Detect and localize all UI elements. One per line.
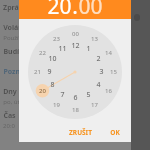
staticText: 20:0 (3, 122, 15, 130)
button[interactable]: OK (105, 125, 125, 140)
staticText: 19 (53, 101, 60, 109)
staticText: 2 (96, 54, 101, 64)
button[interactable]: 00 (78, 0, 103, 19)
staticText: 00 (72, 30, 79, 38)
staticText: Použít (3, 34, 21, 42)
staticText: 23 (53, 35, 60, 43)
staticText: 10 (48, 54, 57, 64)
staticText: 16 (105, 87, 112, 95)
button[interactable]: Dny (0, 84, 150, 108)
staticText: 7 (60, 90, 65, 100)
staticText: 17 (91, 101, 98, 109)
staticText: 21 (34, 68, 41, 76)
staticText: Budík (3, 47, 24, 57)
button[interactable]: Poznámka (0, 64, 150, 84)
button[interactable]: 20 (47, 0, 72, 19)
staticText: OK (110, 128, 120, 137)
staticText: 3 (99, 67, 104, 77)
staticText: 5 (86, 90, 91, 100)
staticText: 6 (73, 93, 78, 103)
staticText: po, út (3, 98, 20, 106)
staticText: 11 (58, 44, 67, 54)
button[interactable]: Zpráva (0, 0, 150, 20)
staticText: 9 (47, 67, 52, 77)
staticText: Volání (3, 23, 25, 33)
staticText: 13 (91, 35, 98, 43)
button[interactable]: ZRUŠIT (64, 125, 97, 140)
staticText: Čas (3, 111, 16, 121)
staticText: . (72, 0, 78, 19)
staticText: 1 (86, 44, 91, 54)
staticText: ZRUŠIT (69, 128, 92, 137)
button[interactable]: Čas (0, 108, 150, 132)
staticText: 14 (105, 49, 112, 57)
staticText: 20 (39, 87, 46, 95)
staticText: Poznámka (3, 67, 40, 77)
staticText: Dny (3, 87, 17, 97)
staticText: 22 (39, 49, 46, 57)
staticText: 8 (50, 80, 55, 90)
staticText: 18 (72, 106, 79, 114)
button[interactable]: Budík (0, 44, 150, 64)
button[interactable]: Volání (0, 20, 150, 44)
staticText: 15 (110, 68, 117, 76)
staticText: 4 (96, 80, 101, 90)
staticText: 12 (71, 41, 80, 51)
staticText: Zpráva (3, 3, 27, 13)
